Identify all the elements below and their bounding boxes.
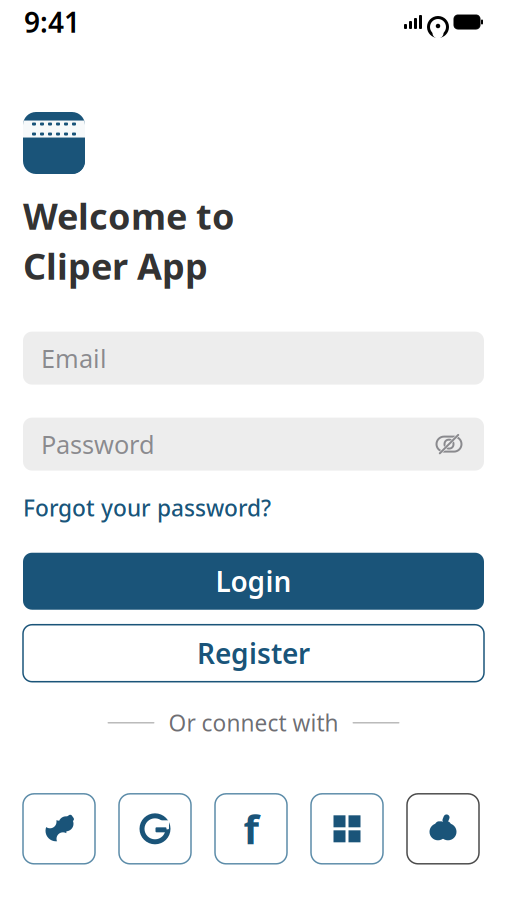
button[interactable]: Register [23, 625, 484, 682]
staticText: 9:41 [24, 3, 80, 41]
button[interactable]: Sign in with Twitter [23, 794, 95, 864]
button[interactable]: Sign in with Google [119, 794, 191, 864]
staticText: f [243, 802, 258, 855]
staticText: Login [215, 563, 291, 600]
button[interactable]: Forgot your password? [23, 489, 271, 527]
button[interactable]: Show password [432, 427, 466, 461]
staticText: Email [41, 341, 107, 375]
button[interactable]: Sign in with Microsoft [311, 794, 383, 864]
staticText: Register [197, 635, 310, 672]
button[interactable]: Login [23, 553, 484, 610]
button[interactable]: Sign in with Apple [407, 794, 479, 864]
staticText: Password [41, 427, 155, 461]
staticText: Or connect with [168, 708, 338, 738]
button[interactable]: Sign in with Facebook [215, 794, 287, 864]
staticText: Cliper App [23, 242, 208, 290]
staticText: Forgot your password? [23, 493, 271, 523]
staticText: Welcome to [23, 192, 235, 240]
